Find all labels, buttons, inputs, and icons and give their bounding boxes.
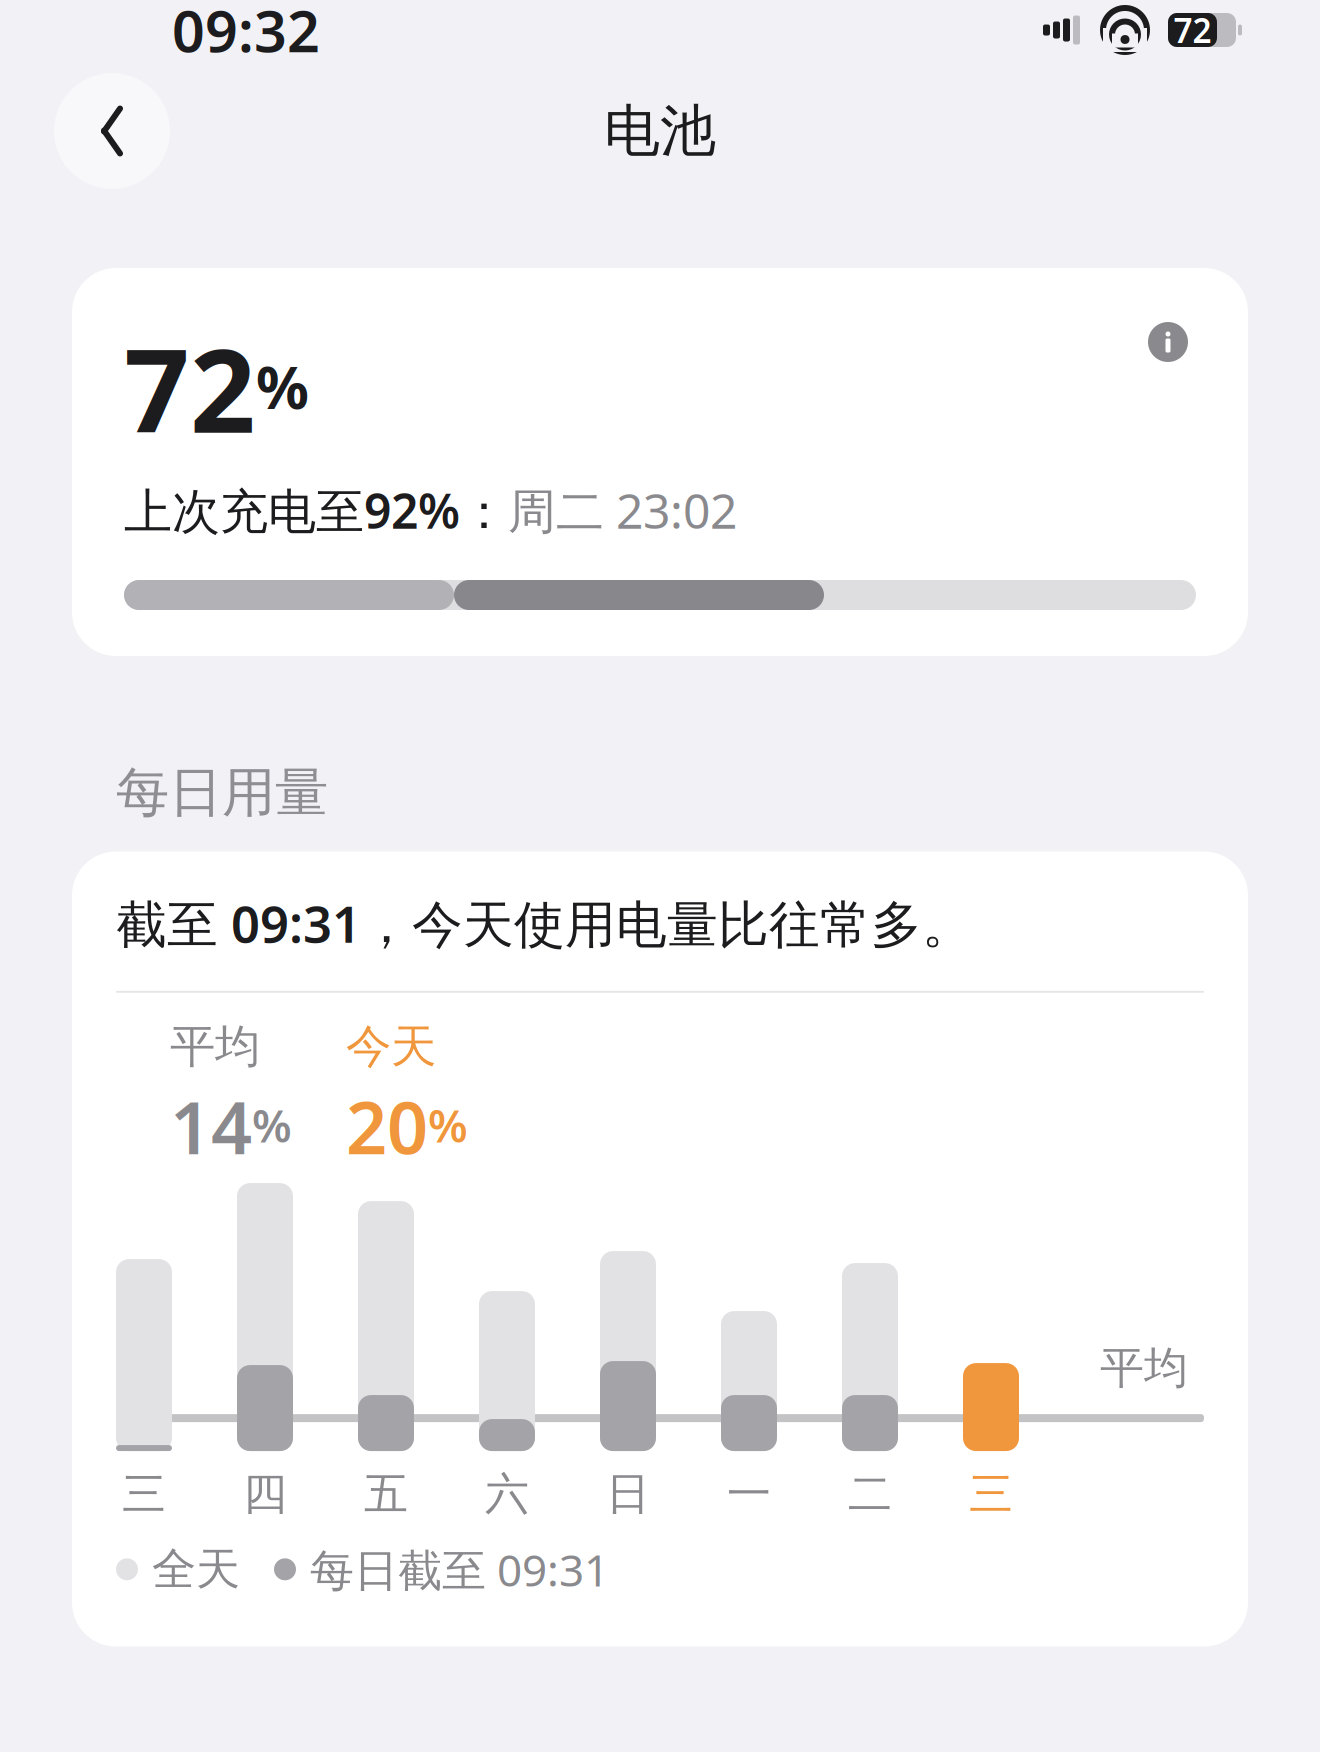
staticText: 四 <box>243 1467 287 1521</box>
staticText: 周二 23:02 <box>508 478 737 542</box>
staticText: 二 <box>848 1467 892 1521</box>
staticText: 72 <box>124 312 256 464</box>
staticText: 平均 <box>1100 1341 1188 1395</box>
staticText: 三 <box>122 1467 166 1521</box>
staticText: 全天 <box>152 1542 240 1596</box>
staticText: 上次充电至92%： <box>124 478 508 542</box>
staticText: 三 <box>969 1467 1013 1521</box>
staticText: 截至 09:31，今天使用电量比往常多。 <box>116 889 973 957</box>
staticText: 今天 <box>346 1019 436 1074</box>
staticText: 六 <box>485 1467 529 1521</box>
staticText: 日 <box>606 1467 650 1521</box>
button[interactable]: 电池信息 <box>1140 314 1196 370</box>
button[interactable]: 返回 <box>54 73 170 189</box>
staticText: 09:32 <box>172 0 320 68</box>
staticText: % <box>252 1095 292 1155</box>
staticText: % <box>256 347 309 425</box>
staticText: 20 <box>346 1078 428 1174</box>
staticText: 每日截至 09:31 <box>310 1540 609 1598</box>
staticText: 72 <box>1173 8 1211 52</box>
staticText: % <box>428 1095 468 1155</box>
staticText: 电池 <box>604 97 716 165</box>
staticText: 五 <box>364 1467 408 1521</box>
staticText: 一 <box>727 1467 771 1521</box>
staticText: 14 <box>170 1078 252 1174</box>
staticText: 每日用量 <box>116 760 328 825</box>
staticText: 平均 <box>170 1019 260 1074</box>
